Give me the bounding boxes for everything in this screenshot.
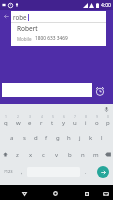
staticText: m xyxy=(93,151,99,159)
button[interactable]: k xyxy=(85,129,96,146)
staticText: d xyxy=(34,134,38,142)
button[interactable]: 1 xyxy=(0,112,12,129)
staticText: 6 xyxy=(63,114,65,119)
button[interactable]: . xyxy=(81,163,90,180)
staticText: u xyxy=(73,119,77,127)
staticText: 1 xyxy=(5,114,7,119)
button[interactable]: c xyxy=(37,146,50,163)
staticText: n xyxy=(81,151,85,159)
button[interactable]: 3 xyxy=(24,112,36,129)
staticText: ?123 xyxy=(4,169,13,174)
staticText: v xyxy=(55,151,59,159)
button[interactable]: m xyxy=(89,146,102,163)
staticText: . xyxy=(85,168,87,175)
staticText: 8 xyxy=(85,114,87,119)
button[interactable]: Back xyxy=(19,188,30,199)
button[interactable]: Robert xyxy=(17,24,68,42)
staticText: 2 xyxy=(17,114,19,119)
staticText: 4 xyxy=(41,114,43,119)
staticText: e xyxy=(28,119,32,127)
button[interactable]: g xyxy=(52,129,63,146)
button[interactable]: d xyxy=(30,129,41,146)
staticText: y xyxy=(62,119,66,127)
staticText: x xyxy=(29,151,33,159)
button[interactable]: 9 xyxy=(91,112,102,129)
button[interactable]: l xyxy=(96,129,107,146)
button[interactable]: 4 xyxy=(36,112,47,129)
staticText: s xyxy=(23,134,26,142)
button[interactable]: f xyxy=(41,129,52,146)
button[interactable]: n xyxy=(76,146,89,163)
staticText: o xyxy=(95,119,99,127)
button[interactable]: 8 xyxy=(80,112,91,129)
staticText: i xyxy=(85,119,87,127)
staticText: p xyxy=(106,119,110,127)
staticText: Mobile xyxy=(17,36,32,42)
staticText: b xyxy=(68,151,72,159)
staticText: w xyxy=(16,119,21,127)
button[interactable]: Recent apps xyxy=(81,188,92,199)
button[interactable]: a xyxy=(6,129,18,146)
button[interactable]: x xyxy=(24,146,37,163)
button[interactable]: Set alarm xyxy=(94,85,106,97)
button[interactable]: 0 xyxy=(102,112,113,129)
button[interactable]: 5 xyxy=(47,112,58,129)
button[interactable]: ?123 xyxy=(1,163,15,180)
staticText: 9 xyxy=(96,114,98,119)
staticText: q xyxy=(4,119,8,127)
button[interactable]: 6 xyxy=(58,112,69,129)
staticText: c xyxy=(42,151,45,159)
staticText: 4:00 xyxy=(101,2,111,9)
button[interactable]: v xyxy=(50,146,63,163)
staticText: k xyxy=(89,134,93,142)
button[interactable]: Enter xyxy=(97,166,109,178)
staticText: , xyxy=(21,168,23,175)
button[interactable]: Back xyxy=(2,12,11,21)
button[interactable]: 2 xyxy=(12,112,24,129)
staticText: f xyxy=(45,134,48,142)
button[interactable]: j xyxy=(74,129,85,146)
staticText: a xyxy=(10,134,14,142)
staticText: z xyxy=(16,151,19,159)
staticText: robe xyxy=(13,13,27,21)
button[interactable]: s xyxy=(18,129,30,146)
staticText: 0 xyxy=(107,114,109,119)
button[interactable]: Voice input xyxy=(101,104,112,115)
staticText: t xyxy=(51,119,54,127)
staticText: r xyxy=(40,119,43,127)
button[interactable]: , xyxy=(17,163,26,180)
staticText: l xyxy=(101,134,103,142)
button[interactable]: Home xyxy=(50,188,61,199)
button[interactable]: Hide keyboard xyxy=(100,188,111,199)
staticText: 5 xyxy=(52,114,54,119)
staticText: j xyxy=(79,134,81,142)
staticText: 3 xyxy=(29,114,31,119)
staticText: 1800 633 3469 xyxy=(35,35,68,42)
button[interactable]: h xyxy=(63,129,74,146)
button[interactable]: 7 xyxy=(69,112,80,129)
button[interactable]: Backspace xyxy=(102,146,113,163)
staticText: 7 xyxy=(74,114,76,119)
staticText: h xyxy=(67,134,71,142)
button[interactable]: robe xyxy=(11,11,106,22)
button[interactable]: z xyxy=(11,146,24,163)
button[interactable]: Shift xyxy=(0,146,11,163)
staticText: Robert xyxy=(17,24,38,33)
staticText: g xyxy=(56,134,60,142)
button[interactable]: b xyxy=(63,146,76,163)
